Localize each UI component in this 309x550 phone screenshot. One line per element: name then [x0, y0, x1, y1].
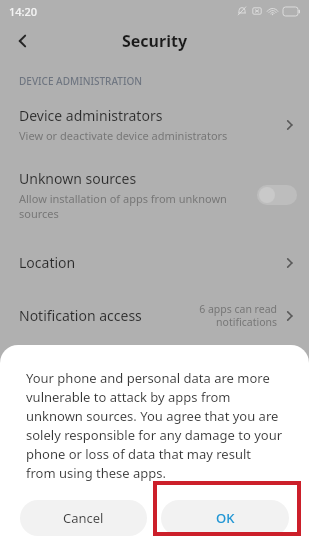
staticText: Security	[122, 30, 188, 52]
button[interactable]: Unknown sources	[0, 165, 309, 225]
staticText: Location	[19, 253, 281, 272]
button[interactable]: Notification access	[0, 298, 309, 333]
staticText: Device administrators	[19, 106, 163, 125]
button[interactable]: Apps with usage access	[0, 355, 309, 374]
button[interactable]: Location	[0, 247, 309, 278]
staticText: Unknown sources	[19, 169, 137, 188]
button[interactable]: Cancel	[20, 500, 147, 536]
staticText: Allow installation of apps from unknown …	[19, 191, 247, 221]
button[interactable]: OK	[161, 500, 289, 536]
staticText: Apps with usage access	[19, 355, 281, 374]
staticText: OK	[216, 509, 235, 527]
staticText: 14:20	[9, 4, 38, 19]
button[interactable]: Back	[6, 24, 40, 58]
button[interactable]: Device administrators	[0, 102, 309, 147]
staticText: Notification access	[19, 306, 199, 325]
button[interactable]: Unknown sources switch, off	[257, 185, 297, 205]
staticText: Cancel	[63, 509, 104, 527]
staticText: DEVICE ADMINISTRATION	[19, 74, 143, 88]
staticText: 6 apps can read notifications	[199, 302, 277, 329]
staticText: View or deactivate device administrators	[19, 128, 228, 143]
staticText: Your phone and personal data are more vu…	[26, 369, 283, 482]
